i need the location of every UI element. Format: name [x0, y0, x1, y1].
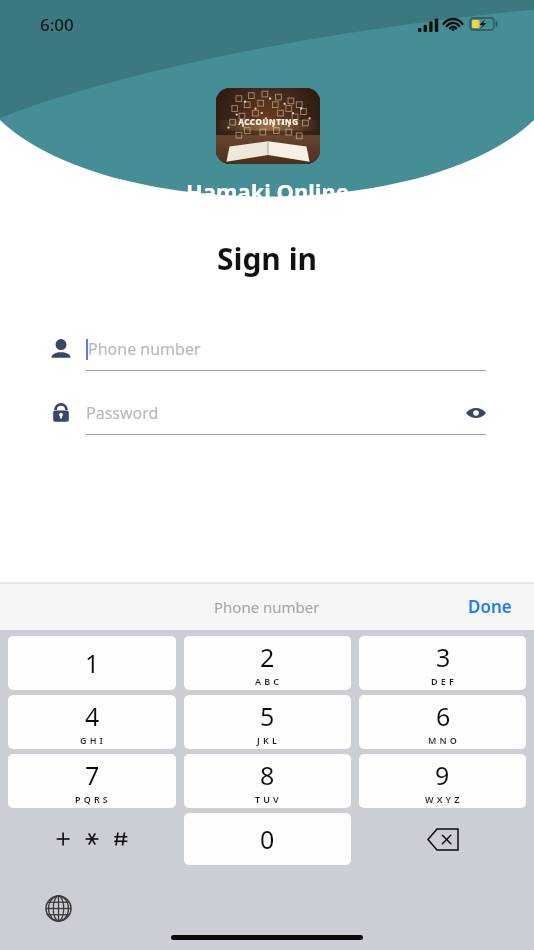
staticText: 7 [85, 758, 100, 792]
button[interactable]: 2 [184, 636, 351, 690]
button[interactable]: 8 [184, 754, 351, 808]
staticText: 5 [260, 699, 275, 733]
staticText: Hamaki Online [186, 176, 349, 206]
button[interactable]: 9 [359, 754, 526, 808]
staticText: M N O [428, 734, 458, 746]
button[interactable]: Password [48, 391, 486, 435]
staticText: ACCOUNTING [238, 116, 299, 127]
button[interactable]: 3 [359, 636, 526, 690]
staticText: Password [86, 402, 159, 424]
button[interactable]: Phone number [48, 327, 486, 371]
button[interactable]: 6 [359, 695, 526, 749]
staticText: 3 [436, 640, 451, 674]
staticText: 8 [260, 758, 275, 792]
button[interactable]: 0 [184, 813, 351, 865]
staticText: T U V [255, 793, 280, 805]
staticText: 1 [85, 646, 100, 680]
staticText: D E F [431, 675, 455, 687]
staticText: 6:00 [40, 13, 74, 36]
button[interactable]: 7 [8, 754, 176, 808]
staticText: Phone number [214, 597, 320, 617]
button[interactable]: Show password [466, 406, 486, 420]
button[interactable]: 4 [8, 695, 176, 749]
staticText: 0 [260, 822, 275, 856]
button[interactable]: 1 [8, 636, 176, 690]
staticText: Phone number [88, 338, 201, 360]
staticText: J K L [257, 734, 278, 746]
staticText: Sign in [0, 238, 534, 279]
staticText: 4 [85, 699, 100, 733]
button[interactable]: Change keyboard language [42, 892, 74, 924]
button[interactable]: Done [446, 583, 534, 630]
staticText: Done [468, 595, 512, 618]
staticText: G H I [80, 734, 104, 746]
staticText: W X Y Z [425, 793, 460, 805]
button[interactable]: 5 [184, 695, 351, 749]
other: Hamaki Online app icon [216, 88, 320, 164]
staticText: A B C [255, 675, 280, 687]
staticText: 9 [435, 758, 450, 792]
staticText: P Q R S [75, 793, 109, 805]
staticText: 6 [436, 699, 451, 733]
button[interactable]: Backspace [359, 813, 526, 865]
staticText: 2 [260, 640, 275, 674]
button[interactable]: Plus star pound [8, 813, 176, 865]
